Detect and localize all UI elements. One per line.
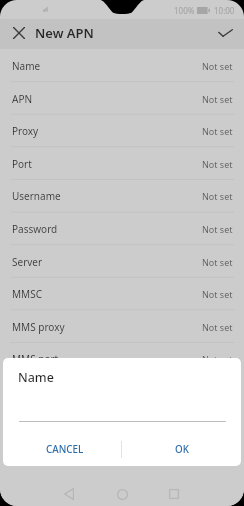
staticText: OK	[175, 443, 189, 456]
staticText: Not set	[202, 158, 233, 170]
staticText: Server	[12, 255, 43, 269]
button[interactable]: Save	[210, 18, 240, 48]
staticText: Not set	[202, 256, 233, 268]
staticText: 10:00	[214, 5, 235, 16]
staticText: Not set	[202, 321, 233, 333]
staticText: MMS proxy	[12, 320, 65, 334]
staticText: Port	[12, 157, 32, 171]
button[interactable]: Name	[0, 49, 244, 82]
staticText: Name	[12, 59, 41, 73]
staticText: MMSC	[12, 287, 42, 301]
button[interactable]: Server	[0, 245, 244, 278]
button[interactable]: Recents	[157, 477, 191, 506]
staticText: APN	[12, 92, 33, 106]
button[interactable]: Back	[52, 477, 86, 506]
staticText: Username	[12, 189, 61, 203]
staticText: Name	[18, 369, 54, 386]
button[interactable]: Username	[0, 179, 244, 212]
button[interactable]: Proxy	[0, 114, 244, 147]
button[interactable]: CANCEL	[3, 433, 121, 466]
staticText: 100%	[174, 5, 195, 16]
button[interactable]: MMS port	[0, 342, 244, 375]
staticText: Not set	[202, 190, 233, 202]
staticText: Not set	[202, 288, 233, 300]
button[interactable]: Close	[4, 18, 34, 48]
staticText: Not set	[202, 223, 233, 235]
button[interactable]: OK	[122, 433, 241, 466]
staticText: Not set	[202, 125, 233, 137]
button[interactable]: MMS proxy	[0, 310, 244, 343]
staticText: New APN	[35, 24, 94, 42]
staticText: MMS port	[12, 352, 59, 366]
staticText: Not set	[202, 93, 233, 105]
staticText: Proxy	[12, 124, 39, 138]
staticText: Not set	[202, 353, 233, 365]
button[interactable]: Password	[0, 212, 244, 245]
staticText: Password	[12, 222, 58, 236]
button[interactable]: MMSC	[0, 277, 244, 310]
button[interactable]: Port	[0, 147, 244, 180]
staticText: Not set	[202, 60, 233, 72]
button[interactable]: APN	[0, 82, 244, 115]
staticText: CANCEL	[46, 443, 84, 456]
button[interactable]: Home	[105, 477, 139, 506]
